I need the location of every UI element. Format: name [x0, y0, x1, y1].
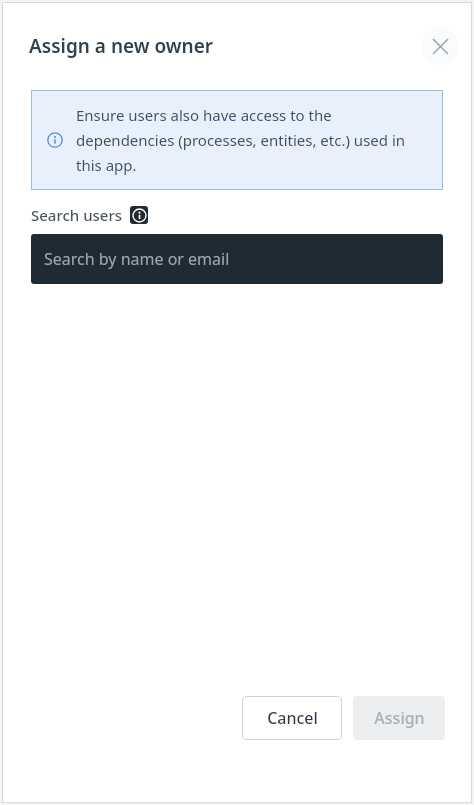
- button[interactable]: Close: [421, 27, 459, 65]
- staticText: Search by name or email: [44, 248, 230, 270]
- staticText: Search users: [31, 205, 123, 225]
- staticText: Assign: [374, 707, 425, 729]
- button[interactable]: Search by name or email: [31, 234, 443, 284]
- staticText: Ensure users also have access to the dep…: [76, 105, 433, 175]
- staticText: Cancel: [267, 707, 318, 729]
- button[interactable]: Assign: [353, 696, 445, 740]
- button[interactable]: More information: [130, 206, 148, 224]
- button[interactable]: Cancel: [242, 696, 342, 740]
- staticText: Assign a new owner: [29, 33, 214, 59]
